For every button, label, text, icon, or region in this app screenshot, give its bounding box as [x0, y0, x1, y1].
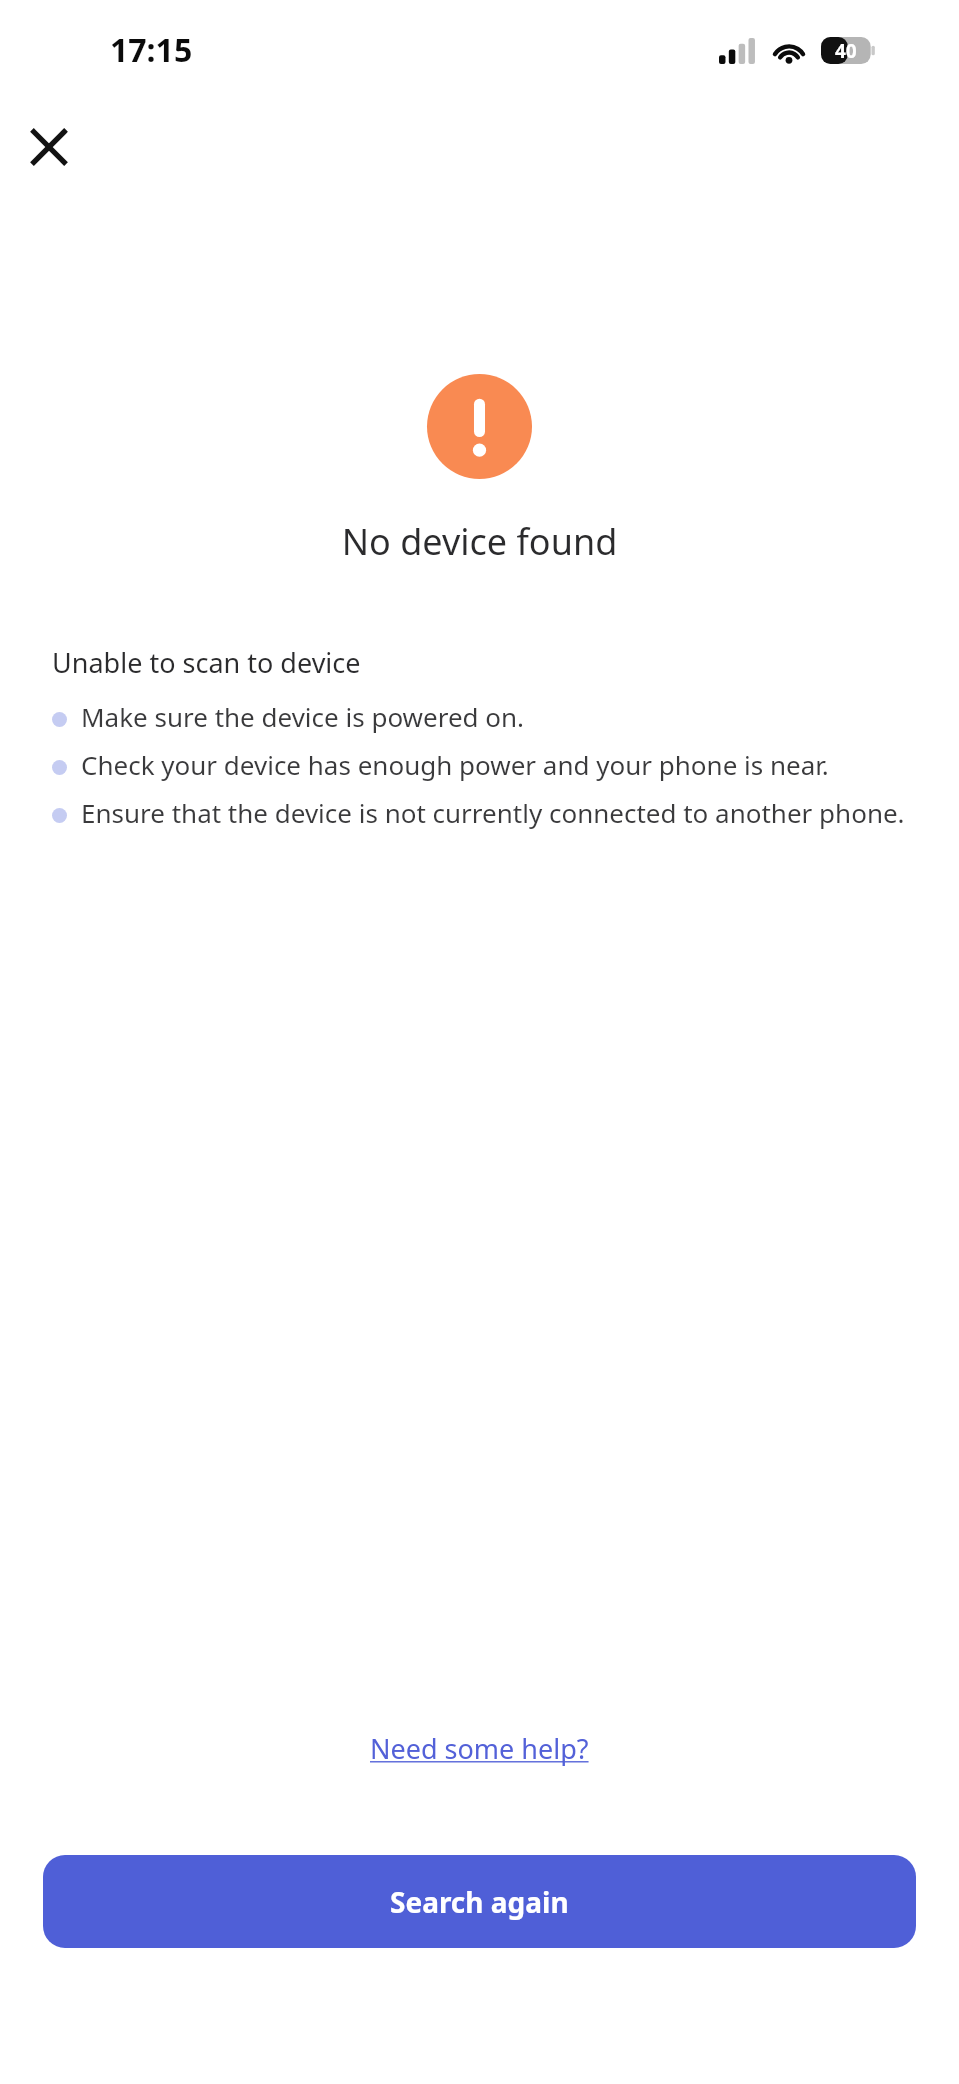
staticText: No device found — [0, 517, 959, 566]
staticText: Unable to scan to device — [52, 644, 361, 681]
button[interactable]: Close — [10, 108, 88, 186]
staticText: 40 — [835, 38, 857, 64]
staticText: Need some help? — [370, 1730, 589, 1767]
staticText: Ensure that the device is not currently … — [81, 795, 905, 830]
staticText: 17:15 — [110, 28, 193, 72]
button[interactable]: Need some help? — [354, 1720, 605, 1777]
staticText: Make sure the device is powered on. — [81, 699, 525, 734]
staticText: Check your device has enough power and y… — [81, 747, 829, 782]
staticText: Search again — [390, 1883, 569, 1921]
button[interactable]: Search again — [43, 1855, 916, 1948]
